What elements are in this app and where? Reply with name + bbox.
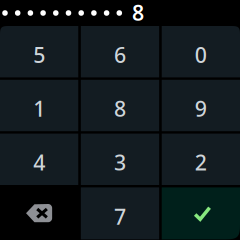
staticText: 6 bbox=[114, 40, 126, 69]
button[interactable]: 2 bbox=[162, 134, 240, 185]
button[interactable]: 9 bbox=[162, 80, 240, 131]
staticText: 1 bbox=[33, 94, 45, 123]
staticText: 8 bbox=[132, 0, 144, 27]
button[interactable]: 5 bbox=[0, 26, 78, 77]
staticText: 3 bbox=[114, 148, 126, 176]
staticText: 5 bbox=[33, 40, 45, 69]
staticText: 9 bbox=[195, 94, 207, 123]
staticText: 8 bbox=[114, 94, 126, 123]
staticText: 4 bbox=[33, 148, 45, 176]
staticText: 2 bbox=[195, 148, 207, 176]
staticText: 0 bbox=[195, 40, 207, 69]
button[interactable]: 3 bbox=[81, 134, 159, 185]
button[interactable]: 6 bbox=[81, 26, 159, 77]
staticText: 7 bbox=[114, 202, 126, 230]
button[interactable]: Delete bbox=[0, 187, 78, 239]
button[interactable]: 4 bbox=[0, 134, 78, 185]
button[interactable]: Confirm bbox=[162, 187, 240, 239]
button[interactable]: 8 bbox=[81, 80, 159, 131]
button[interactable]: 0 bbox=[162, 26, 240, 77]
button[interactable]: 1 bbox=[0, 80, 78, 131]
button[interactable]: 7 bbox=[81, 187, 159, 239]
